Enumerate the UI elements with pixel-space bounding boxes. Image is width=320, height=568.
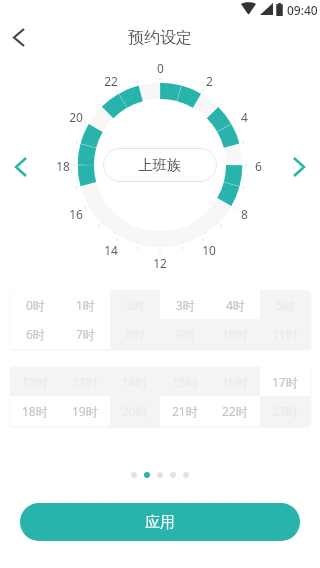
button[interactable]: 21时 xyxy=(160,396,210,426)
staticText: 18 xyxy=(56,158,70,174)
staticText: 23时 xyxy=(272,403,298,419)
staticText: 22 xyxy=(104,73,118,89)
button[interactable]: 6时 xyxy=(10,319,60,349)
staticText: 14 xyxy=(104,242,118,258)
staticText: 4时 xyxy=(226,297,245,313)
staticText: 16 xyxy=(69,206,83,222)
staticText: 16时 xyxy=(222,374,248,390)
staticText: 13时 xyxy=(72,374,98,390)
button[interactable]: 4时 xyxy=(210,290,260,319)
button[interactable]: 7时 xyxy=(60,319,110,349)
button[interactable]: 19时 xyxy=(60,396,110,426)
staticText: 12 xyxy=(153,255,167,271)
staticText: 2 xyxy=(206,73,213,89)
staticText: 3时 xyxy=(176,297,195,313)
button[interactable]: Back xyxy=(0,20,44,60)
staticText: 预约设定 xyxy=(128,28,192,48)
button[interactable]: 3时 xyxy=(160,290,210,319)
staticText: 14时 xyxy=(122,374,148,390)
button[interactable]: 0时 xyxy=(10,290,60,319)
button[interactable]: 17时 xyxy=(260,367,310,396)
staticText: 4 xyxy=(241,109,248,125)
staticText: 15时 xyxy=(172,374,198,390)
button[interactable]: 上班族 xyxy=(103,148,217,182)
staticText: 0 xyxy=(157,60,164,76)
staticText: 10 xyxy=(202,242,216,258)
staticText: 8时 xyxy=(126,326,145,342)
staticText: 21时 xyxy=(172,403,198,419)
staticText: 17时 xyxy=(272,374,298,390)
button[interactable]: 应用 xyxy=(20,503,300,541)
button[interactable]: 18时 xyxy=(10,396,60,426)
staticText: 09:40 xyxy=(287,2,318,18)
staticText: 18时 xyxy=(22,403,48,419)
staticText: 0时 xyxy=(26,297,45,313)
staticText: 12时 xyxy=(22,374,48,390)
staticText: 上班族 xyxy=(138,156,182,174)
staticText: 20 xyxy=(69,109,83,125)
button[interactable]: 22时 xyxy=(210,396,260,426)
staticText: 9时 xyxy=(176,326,195,342)
staticText: 1时 xyxy=(76,297,95,313)
staticText: 5时 xyxy=(276,297,295,313)
staticText: 6 xyxy=(255,158,262,174)
staticText: 19时 xyxy=(72,403,98,419)
staticText: 20时 xyxy=(122,403,148,419)
button[interactable]: Previous profile xyxy=(3,149,39,185)
button[interactable]: 1时 xyxy=(60,290,110,319)
staticText: 6时 xyxy=(26,326,45,342)
staticText: 11时 xyxy=(272,326,298,342)
staticText: 2时 xyxy=(126,297,145,313)
staticText: 10时 xyxy=(222,326,248,342)
staticText: 应用 xyxy=(145,513,175,532)
button[interactable]: Next profile xyxy=(281,149,317,185)
staticText: 8 xyxy=(241,206,248,222)
staticText: 22时 xyxy=(222,403,248,419)
staticText: 7时 xyxy=(76,326,95,342)
